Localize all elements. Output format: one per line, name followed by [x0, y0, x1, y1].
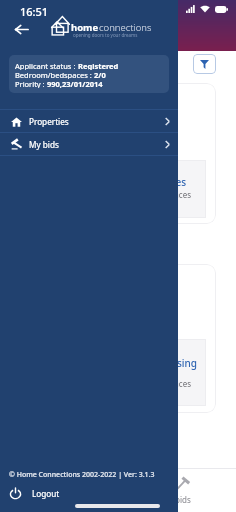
staticText: Bedroom/bedspaces : — [15, 70, 94, 79]
button[interactable]: My bids — [0, 133, 178, 155]
staticText: 16:51 — [20, 4, 49, 19]
button[interactable] — [120, 264, 216, 413]
staticText: home — [71, 21, 99, 34]
staticText: connections — [99, 21, 152, 34]
button[interactable]: Filter — [193, 54, 216, 74]
staticText: Registered — [78, 61, 119, 70]
button[interactable]: Logout — [0, 481, 178, 505]
staticText: Logout — [32, 488, 60, 499]
staticText: opening doors to your dreams — [73, 32, 138, 38]
staticText: © Home Connections 2002-2022 | Ver: 3.1.… — [9, 470, 155, 480]
button[interactable]: bids — [160, 476, 206, 505]
staticText: Properties — [29, 116, 69, 127]
staticText: My bids — [29, 139, 59, 150]
staticText: 990,23/01/2014 — [47, 79, 103, 88]
staticText: Sheltered housing — [46, 356, 197, 370]
staticText: 1 bedspaces — [46, 378, 191, 389]
button[interactable]: Back — [8, 16, 34, 42]
staticText: Applicant status : — [15, 61, 78, 70]
button[interactable] — [120, 83, 216, 224]
staticText: 2 bedspaces — [46, 189, 191, 200]
staticText: bids — [175, 494, 191, 505]
staticText: Priority : — [15, 79, 47, 88]
staticText: General needs properties — [46, 175, 186, 189]
staticText: 2/0 — [94, 70, 106, 79]
button[interactable]: Properties — [0, 110, 178, 132]
